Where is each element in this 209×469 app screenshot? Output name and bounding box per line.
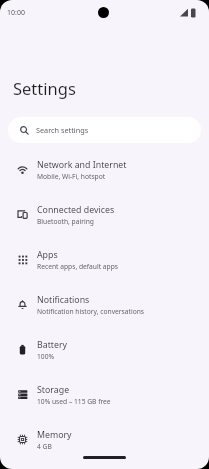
staticText: Mobile, Wi-Fi, hotspot <box>37 172 106 181</box>
button[interactable]: Apps <box>0 237 209 282</box>
staticText: 10% used – 115 GB free <box>37 397 111 406</box>
staticText: 10:00 <box>7 8 25 18</box>
staticText: Storage <box>37 384 70 396</box>
staticText: Memory <box>37 429 72 441</box>
button[interactable]: Battery <box>0 327 209 372</box>
button[interactable]: Network and Internet <box>0 147 209 192</box>
button[interactable]: Storage <box>0 372 209 417</box>
staticText: 4 GB <box>37 442 52 451</box>
staticText: Connected devices <box>37 204 115 216</box>
staticText: Search settings <box>36 125 89 135</box>
button[interactable]: Search settings <box>8 117 201 143</box>
button[interactable]: Notifications <box>0 282 209 327</box>
staticText: Battery <box>37 339 68 351</box>
staticText: Notifications <box>37 294 90 306</box>
staticText: Network and Internet <box>37 159 127 171</box>
staticText: Bluetooth, pairing <box>37 217 94 226</box>
button[interactable]: Connected devices <box>0 192 209 237</box>
staticText: Settings <box>13 77 76 99</box>
staticText: Apps <box>37 249 58 261</box>
staticText: Recent apps, default apps <box>37 262 119 271</box>
button[interactable]: Memory <box>0 417 209 462</box>
staticText: Notification history, conversations <box>37 307 145 316</box>
staticText: 100% <box>37 352 55 361</box>
